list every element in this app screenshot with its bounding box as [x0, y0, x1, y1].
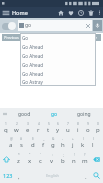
staticText: -: [62, 137, 64, 141]
staticText: b: [61, 157, 65, 165]
staticText: i: [77, 126, 79, 134]
staticText: good: [18, 111, 31, 118]
button[interactable]: (: [78, 135, 88, 151]
button[interactable]: Menu: [0, 7, 11, 18]
staticText: ): [93, 137, 94, 141]
staticText: a: [9, 141, 13, 149]
staticText: *: [18, 153, 20, 157]
staticText: 0: [97, 122, 99, 126]
button[interactable]: Expand suggestions: [0, 108, 10, 120]
staticText: q: [4, 126, 8, 134]
button[interactable]: Search: [90, 167, 103, 183]
staticText: :: [52, 153, 53, 157]
button[interactable]: go: [18, 20, 92, 31]
staticText: English: [46, 173, 59, 178]
button[interactable]: *: [13, 151, 24, 167]
staticText: l: [92, 141, 94, 149]
staticText: f: [42, 141, 45, 149]
staticText: ;: [63, 153, 64, 157]
staticText: h: [61, 141, 65, 149]
staticText: _: [43, 137, 45, 141]
button[interactable]: Go: [20, 33, 96, 42]
button[interactable]: ,: [15, 167, 23, 183]
staticText: 8: [77, 122, 79, 126]
button[interactable]: 5: [43, 120, 53, 135]
button[interactable]: go: [39, 111, 69, 118]
button[interactable]: Favorites: [66, 7, 76, 18]
staticText: j: [72, 141, 74, 149]
button[interactable]: 4: [33, 120, 43, 135]
button[interactable]: Home: [56, 7, 66, 18]
staticText: (: [83, 137, 84, 141]
button[interactable]: ": [24, 151, 35, 167]
button[interactable]: $: [27, 135, 38, 151]
staticText: k: [81, 141, 85, 149]
staticText: Go Astray: [22, 79, 43, 85]
staticText: $: [32, 137, 34, 141]
button[interactable]: 1: [0, 120, 11, 135]
staticText: 6: [57, 122, 59, 126]
button[interactable]: Go Ahead: [20, 42, 96, 51]
staticText: 1: [5, 122, 7, 126]
staticText: Go Ahead: [22, 71, 44, 77]
button[interactable]: Shift: [0, 151, 13, 167]
button[interactable]: 123: [0, 167, 15, 183]
button[interactable]: Go Ahead: [20, 51, 96, 60]
staticText: Clear: [88, 35, 97, 40]
button[interactable]: ;: [57, 151, 68, 167]
button[interactable]: 3: [22, 120, 33, 135]
button[interactable]: +: [68, 135, 78, 151]
staticText: z: [17, 157, 20, 165]
button[interactable]: @: [5, 135, 16, 151]
button[interactable]: More options: [96, 7, 103, 18]
staticText: ,: [18, 173, 20, 181]
button[interactable]: 9: [83, 120, 93, 135]
button[interactable]: &: [48, 135, 58, 151]
button[interactable]: ': [35, 151, 46, 167]
button[interactable]: Go Astray: [20, 78, 96, 86]
staticText: go: [51, 111, 58, 118]
staticText: Go Ahead: [22, 53, 44, 59]
staticText: n: [72, 157, 76, 165]
staticText: m: [82, 157, 88, 165]
button[interactable]: #: [16, 135, 27, 151]
button[interactable]: .: [82, 167, 90, 183]
button[interactable]: Delete: [86, 7, 96, 18]
button[interactable]: History: [76, 7, 86, 18]
staticText: go: [25, 22, 32, 29]
button[interactable]: Go Ahead: [20, 60, 96, 69]
button[interactable]: -: [58, 135, 68, 151]
button[interactable]: Previous: [2, 34, 20, 41]
button[interactable]: Backspace: [90, 151, 103, 167]
button[interactable]: Space: [23, 167, 82, 183]
staticText: r: [37, 126, 40, 134]
staticText: #: [20, 137, 23, 141]
button[interactable]: :: [46, 151, 57, 167]
staticText: +: [72, 137, 74, 141]
staticText: Go: [22, 35, 29, 41]
staticText: .: [85, 173, 87, 181]
button[interactable]: Go Ahead: [20, 69, 96, 78]
staticText: Previous: [4, 35, 19, 40]
button[interactable]: 8: [73, 120, 83, 135]
button[interactable]: Toggle: [1, 20, 18, 32]
button[interactable]: 0: [93, 120, 103, 135]
button[interactable]: 6: [53, 120, 63, 135]
button[interactable]: !: [68, 151, 79, 167]
button[interactable]: 7: [63, 120, 73, 135]
button[interactable]: ): [88, 135, 98, 151]
button[interactable]: Clear text: [83, 20, 92, 31]
button[interactable]: _: [38, 135, 48, 151]
staticText: 2: [16, 122, 18, 126]
staticText: x: [28, 157, 32, 165]
staticText: !: [74, 153, 75, 157]
button[interactable]: Clear: [83, 34, 101, 41]
staticText: Go Ahead: [22, 62, 44, 68]
staticText: 9: [87, 122, 89, 126]
staticText: ': [40, 153, 41, 157]
button[interactable]: ?: [79, 151, 90, 167]
staticText: w: [14, 126, 19, 134]
button[interactable]: 2: [11, 120, 22, 135]
button[interactable]: going: [69, 111, 99, 118]
button[interactable]: Voice search: [93, 20, 102, 31]
